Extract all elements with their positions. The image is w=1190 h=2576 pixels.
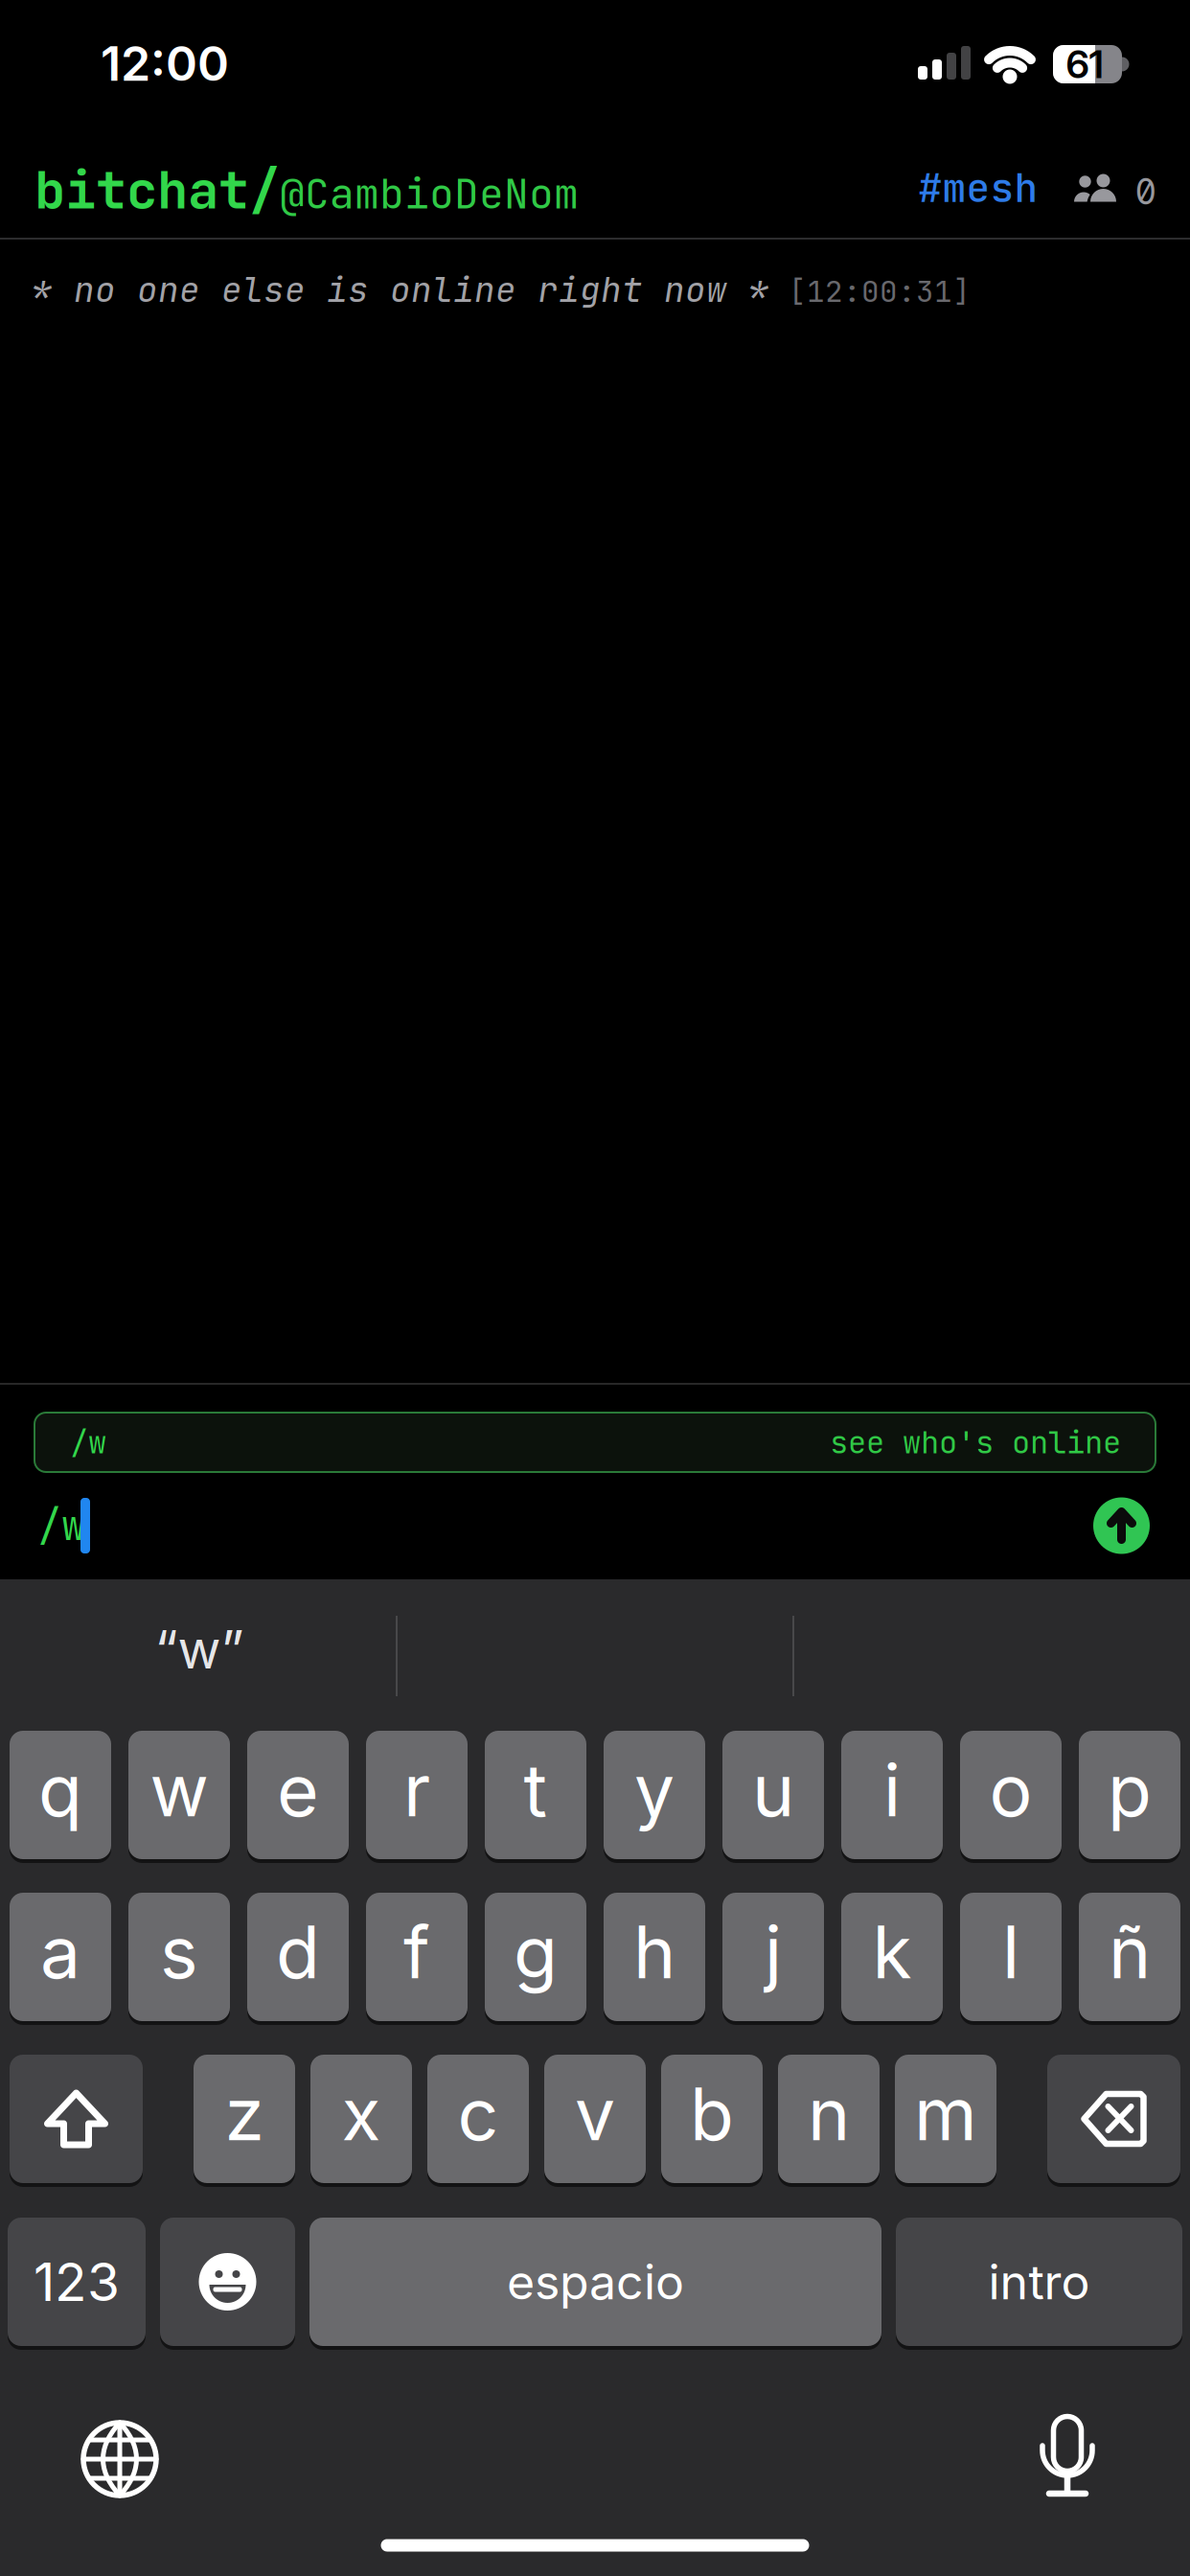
button[interactable]: People [1071, 165, 1156, 213]
staticText: 0 [1135, 169, 1156, 214]
button[interactable]: w [128, 1731, 230, 1863]
staticText: d [276, 1909, 320, 1996]
staticText: ñ [1109, 1909, 1151, 1996]
button[interactable]: g [485, 1893, 586, 2025]
staticText: “w” [155, 1617, 244, 1681]
button[interactable]: 123 [8, 2218, 146, 2350]
button[interactable]: t [485, 1731, 586, 1863]
staticText: /w [37, 1499, 85, 1552]
staticText: u [752, 1747, 794, 1834]
button[interactable]: v [544, 2055, 646, 2187]
button[interactable]: r [366, 1731, 468, 1863]
staticText: e [277, 1747, 319, 1834]
button[interactable]: x [310, 2055, 412, 2187]
staticText: k [872, 1909, 912, 1996]
staticText: h [633, 1909, 675, 1996]
button[interactable]: k [841, 1893, 943, 2025]
staticText: y [634, 1747, 675, 1834]
staticText: m [914, 2071, 977, 2158]
button[interactable]: a [10, 1893, 111, 2025]
staticText: o [989, 1747, 1032, 1834]
staticText: b [690, 2071, 734, 2158]
button[interactable]: h [604, 1893, 705, 2025]
button[interactable]: b [661, 2055, 763, 2187]
button[interactable]: Shift [10, 2055, 143, 2187]
staticText: w [150, 1747, 208, 1834]
button[interactable]: e [247, 1731, 349, 1863]
staticText: s [160, 1909, 198, 1996]
button[interactable]: Next keyboard [77, 2416, 163, 2502]
button[interactable]: s [128, 1893, 230, 2025]
staticText: * no one else is online right now * [32, 267, 769, 312]
staticText: i [883, 1747, 901, 1834]
button[interactable]: #mesh [918, 162, 1038, 214]
staticText: x [342, 2071, 381, 2158]
staticText: r [403, 1747, 430, 1834]
staticText: /w [70, 1422, 106, 1463]
staticText: 123 [34, 2250, 120, 2314]
staticText: q [38, 1747, 82, 1834]
staticText: #mesh [918, 162, 1038, 214]
button[interactable]: i [841, 1731, 943, 1863]
button[interactable]: f [366, 1893, 468, 2025]
button[interactable]: c [427, 2055, 529, 2187]
button[interactable]: Delete [1047, 2055, 1180, 2187]
staticText: bitchat/ [34, 156, 280, 224]
button[interactable]: Emoji [160, 2218, 295, 2350]
staticText: espacio [507, 2253, 684, 2311]
button[interactable]: q [10, 1731, 111, 1863]
staticText: [12:00:31] [789, 272, 971, 311]
button[interactable]: Dictation [1024, 2416, 1110, 2502]
staticText: j [765, 1909, 782, 1996]
button[interactable]: u [722, 1731, 824, 1863]
button[interactable]: “w” [46, 1597, 353, 1702]
staticText: p [1108, 1747, 1152, 1834]
button[interactable]: ñ [1079, 1893, 1180, 2025]
staticText: g [514, 1909, 558, 1996]
staticText: c [458, 2071, 499, 2158]
button[interactable]: o [960, 1731, 1062, 1863]
staticText: v [575, 2071, 615, 2158]
button[interactable]: espacio [309, 2218, 881, 2350]
button[interactable]: n [778, 2055, 880, 2187]
button[interactable]: d [247, 1893, 349, 2025]
button[interactable]: p [1079, 1731, 1180, 1863]
staticText: t [524, 1747, 548, 1834]
button[interactable]: m [895, 2055, 996, 2187]
button[interactable]: z [194, 2055, 295, 2187]
button[interactable]: /w [34, 1413, 1156, 1472]
staticText: intro [988, 2253, 1090, 2311]
button[interactable]: j [722, 1893, 824, 2025]
button[interactable]: intro [896, 2218, 1182, 2350]
staticText: see who's online [830, 1422, 1121, 1463]
staticText: z [225, 2071, 264, 2158]
button[interactable]: l [960, 1893, 1062, 2025]
staticText: 61 [1066, 41, 1103, 87]
button[interactable]: bitchat/ [34, 156, 579, 224]
staticText: f [403, 1909, 430, 1996]
staticText: @CambioDeNom [280, 166, 579, 221]
button[interactable]: Send [1093, 1497, 1150, 1554]
button[interactable]: y [604, 1731, 705, 1863]
staticText: a [40, 1909, 80, 1996]
staticText: n [808, 2071, 850, 2158]
staticText: 12:00 [101, 34, 229, 92]
staticText: l [1002, 1909, 1019, 1996]
